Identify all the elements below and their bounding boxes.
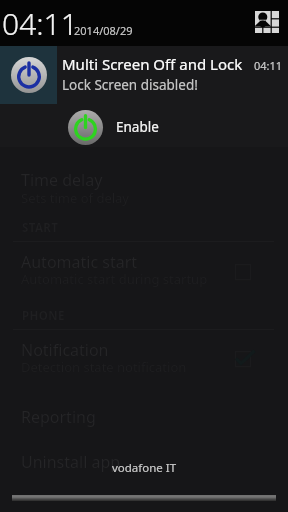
staticText: Reporting [21,406,96,428]
button[interactable]: Enable [0,104,288,147]
staticText: Notification [21,339,109,361]
staticText: Uninstall app [21,451,121,473]
staticText: Enable [116,118,159,136]
staticText: Multi Screen Off and Lock [52,30,221,49]
button[interactable]: Quick settings [247,3,287,41]
staticText: Automatic start [21,251,138,273]
staticText: PHONE [22,308,65,324]
staticText: 2014/08/29 [74,23,133,38]
staticText: Time delay [21,169,103,191]
staticText: vodafone IT [112,460,177,476]
staticText: 04:11 [254,58,283,73]
staticText: Lock Screen disabled! [62,76,198,94]
staticText: 04:11 [2,3,78,44]
button[interactable]: Multi Screen Off and Lock [0,46,288,104]
button[interactable] [0,442,288,484]
staticText: Multi Screen Off and Lock [62,54,248,74]
